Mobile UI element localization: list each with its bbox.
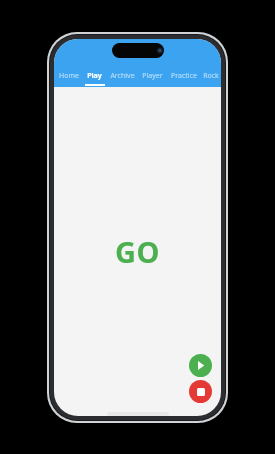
button[interactable]: Archive [106,71,138,87]
staticText: Rock [203,71,219,81]
button[interactable]: Home [54,71,83,87]
button[interactable]: Rock [200,71,221,87]
button[interactable]: Player [138,71,167,87]
button[interactable]: Stop [189,380,212,403]
staticText: Player [142,71,163,81]
button[interactable]: Play [83,71,106,87]
button[interactable]: Practice [167,71,200,87]
staticText: Practice [171,71,197,81]
staticText: Play [87,71,102,81]
staticText: Home [59,71,79,81]
button[interactable]: Play [189,354,212,377]
staticText: Archive [110,71,135,81]
staticText: GO [115,232,160,271]
